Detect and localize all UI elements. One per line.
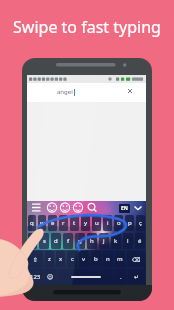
staticText: 123 bbox=[30, 273, 41, 281]
button[interactable]: n bbox=[103, 251, 113, 267]
staticText: z bbox=[48, 255, 51, 263]
staticText: m bbox=[117, 255, 123, 263]
staticText: w bbox=[40, 219, 45, 227]
button[interactable]: s bbox=[39, 233, 49, 249]
button[interactable]: ç bbox=[136, 215, 145, 231]
staticText: v bbox=[82, 255, 86, 263]
staticText: ç bbox=[139, 219, 142, 227]
button[interactable]: Hide keyboard bbox=[133, 203, 143, 213]
staticText: EN bbox=[121, 205, 128, 212]
staticText: s bbox=[43, 237, 46, 245]
staticText: h bbox=[90, 237, 94, 245]
button[interactable]: q bbox=[28, 215, 36, 231]
button[interactable]: c bbox=[67, 251, 77, 267]
staticText: é bbox=[138, 237, 142, 245]
button[interactable]: f bbox=[63, 233, 73, 249]
button[interactable]: a bbox=[28, 233, 37, 249]
button[interactable]: m bbox=[115, 251, 125, 267]
staticText: r bbox=[62, 219, 65, 227]
staticText: j bbox=[103, 237, 105, 245]
staticText: angel bbox=[57, 88, 73, 96]
button[interactable]: p bbox=[125, 215, 134, 231]
staticText: Swipe to fast typing bbox=[0, 16, 174, 38]
staticText: g bbox=[78, 237, 82, 245]
staticText: y bbox=[84, 219, 88, 227]
button[interactable]: d bbox=[51, 233, 61, 249]
button[interactable]: w bbox=[38, 215, 46, 231]
staticText: b bbox=[94, 255, 98, 263]
button[interactable]: l bbox=[123, 233, 133, 249]
button[interactable]: EN bbox=[121, 205, 128, 212]
button[interactable]: angel bbox=[27, 83, 146, 102]
staticText: o bbox=[117, 219, 121, 227]
staticText: ⌫ bbox=[132, 256, 141, 263]
staticText: u bbox=[95, 219, 99, 227]
staticText: e bbox=[51, 219, 55, 227]
staticText: l bbox=[127, 237, 129, 245]
button[interactable]: 123 bbox=[28, 269, 43, 284]
button[interactable]: r bbox=[59, 215, 68, 231]
button[interactable]: ☺ bbox=[45, 269, 56, 284]
staticText: t bbox=[73, 219, 76, 227]
button[interactable]: x bbox=[56, 251, 65, 267]
button[interactable]: b bbox=[91, 251, 101, 267]
staticText: p bbox=[128, 219, 132, 227]
button[interactable]: ⇧ bbox=[28, 251, 43, 267]
staticText: ⇧ bbox=[33, 256, 39, 263]
button[interactable]: é bbox=[135, 233, 145, 249]
button[interactable]: h bbox=[87, 233, 97, 249]
button[interactable]: . bbox=[115, 269, 126, 284]
button[interactable]: t bbox=[70, 215, 79, 231]
staticText: x bbox=[59, 255, 63, 263]
button[interactable]: i bbox=[103, 215, 112, 231]
staticText: ☺ bbox=[47, 273, 54, 280]
button[interactable] bbox=[58, 269, 113, 284]
staticText: f bbox=[67, 237, 70, 245]
button[interactable]: z bbox=[45, 251, 54, 267]
staticText: ↵ bbox=[134, 273, 140, 280]
button[interactable]: u bbox=[92, 215, 101, 231]
staticText: c bbox=[71, 255, 74, 263]
staticText: . bbox=[120, 273, 122, 281]
button[interactable]: ⌫ bbox=[127, 251, 145, 267]
button[interactable]: ↵ bbox=[128, 269, 145, 284]
button[interactable]: v bbox=[79, 251, 89, 267]
staticText: i bbox=[107, 219, 109, 227]
button[interactable]: o bbox=[114, 215, 123, 231]
button[interactable]: Clear bbox=[125, 86, 135, 96]
staticText: d bbox=[54, 237, 58, 245]
staticText: k bbox=[114, 237, 118, 245]
button[interactable]: y bbox=[81, 215, 90, 231]
staticText: q bbox=[30, 219, 34, 227]
staticText: n bbox=[106, 255, 110, 263]
button[interactable]: g bbox=[75, 233, 85, 249]
button[interactable]: j bbox=[99, 233, 109, 249]
button[interactable]: k bbox=[111, 233, 121, 249]
button[interactable]: e bbox=[48, 215, 57, 231]
